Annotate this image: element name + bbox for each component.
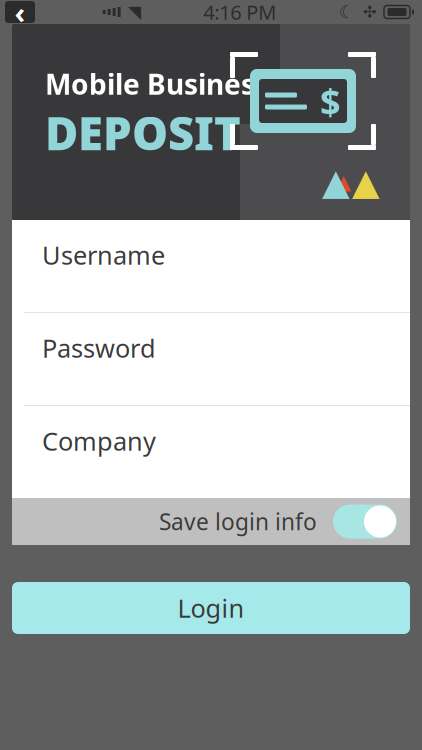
button[interactable]: Username xyxy=(12,220,410,312)
staticText: ▲ xyxy=(352,162,380,202)
button[interactable]: Save login info xyxy=(12,498,410,545)
staticText: ✣ xyxy=(363,3,376,21)
staticText: $ xyxy=(320,77,341,125)
staticText: Mobile Business xyxy=(45,65,269,102)
staticText: Password xyxy=(42,331,156,365)
button[interactable]: Login xyxy=(12,582,410,634)
staticText: Company xyxy=(42,424,156,458)
button[interactable]: Back xyxy=(0,0,40,24)
staticText: Username xyxy=(42,238,165,272)
staticText: ▲ xyxy=(336,171,351,193)
staticText: ▲ xyxy=(322,162,350,202)
staticText: 4:16 PM xyxy=(203,0,276,25)
staticText: Login xyxy=(177,591,244,625)
button[interactable]: Password xyxy=(12,313,410,405)
staticText: ‹ xyxy=(14,0,25,31)
staticText: ◥ xyxy=(128,2,141,22)
staticText: ☾ xyxy=(339,2,355,22)
button[interactable]: Company xyxy=(12,406,410,498)
staticText: DEPOSIT xyxy=(45,102,241,163)
staticText: Save login info xyxy=(159,506,317,536)
